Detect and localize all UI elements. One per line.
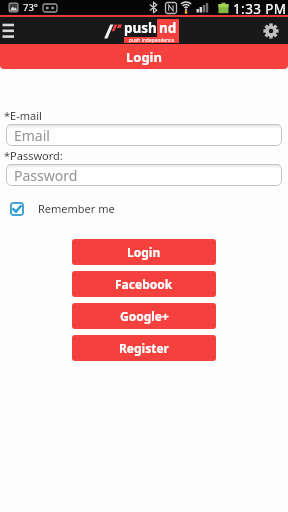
staticText: Password bbox=[14, 166, 78, 185]
button[interactable]: Password bbox=[6, 164, 282, 186]
button[interactable]: Email bbox=[6, 124, 282, 146]
button[interactable] bbox=[263, 23, 279, 39]
staticText: Facebook bbox=[115, 276, 173, 292]
staticText: *E-mail bbox=[4, 108, 42, 123]
staticText: Email bbox=[14, 126, 50, 145]
staticText: Login bbox=[127, 244, 161, 260]
staticText: 1:33 PM bbox=[233, 0, 287, 15]
button[interactable]: Register bbox=[72, 335, 216, 361]
button[interactable] bbox=[2, 23, 15, 39]
button[interactable]: Google+ bbox=[72, 303, 216, 329]
staticText: nd bbox=[159, 19, 177, 37]
staticText: Register bbox=[119, 340, 169, 356]
button[interactable]: Facebook bbox=[72, 271, 216, 297]
staticText: Remember me bbox=[38, 201, 115, 216]
button[interactable]: Remember me bbox=[10, 201, 115, 216]
staticText: push independence bbox=[129, 37, 175, 43]
staticText: 73° bbox=[23, 1, 38, 14]
staticText: push bbox=[124, 19, 157, 37]
staticText: Login bbox=[126, 48, 162, 66]
button[interactable]: Login bbox=[72, 239, 216, 265]
staticText: *Password: bbox=[4, 148, 63, 163]
staticText: Google+ bbox=[120, 308, 169, 324]
